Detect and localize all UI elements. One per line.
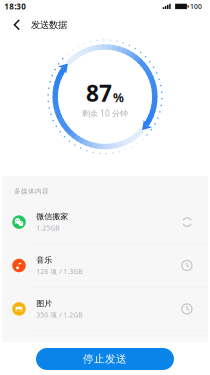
staticText: 多媒体内容 bbox=[14, 187, 49, 195]
button[interactable]: 停止发送 bbox=[36, 348, 174, 370]
staticText: 音乐 bbox=[36, 255, 52, 265]
staticText: 128 项 / 1.3GB bbox=[36, 267, 82, 276]
staticText: 18:30 bbox=[4, 1, 26, 12]
staticText: 剩余 10 分钟 bbox=[82, 108, 128, 119]
button[interactable]: 微信搬家 bbox=[2, 201, 208, 243]
staticText: 图片 bbox=[36, 299, 52, 308]
button[interactable]: Back bbox=[7, 14, 27, 35]
staticText: 350 项 / 1.2GB bbox=[36, 310, 82, 319]
staticText: % bbox=[113, 89, 124, 105]
staticText: 微信搬家 bbox=[36, 212, 68, 222]
staticText: 1.25GB bbox=[36, 224, 59, 232]
button[interactable]: 图片 bbox=[2, 287, 208, 330]
staticText: 87 bbox=[86, 78, 112, 108]
staticText: 100 bbox=[190, 2, 202, 11]
staticText: 停止发送 bbox=[83, 352, 127, 365]
staticText: 发送数据 bbox=[31, 19, 67, 31]
button[interactable]: 音乐 bbox=[2, 244, 208, 287]
